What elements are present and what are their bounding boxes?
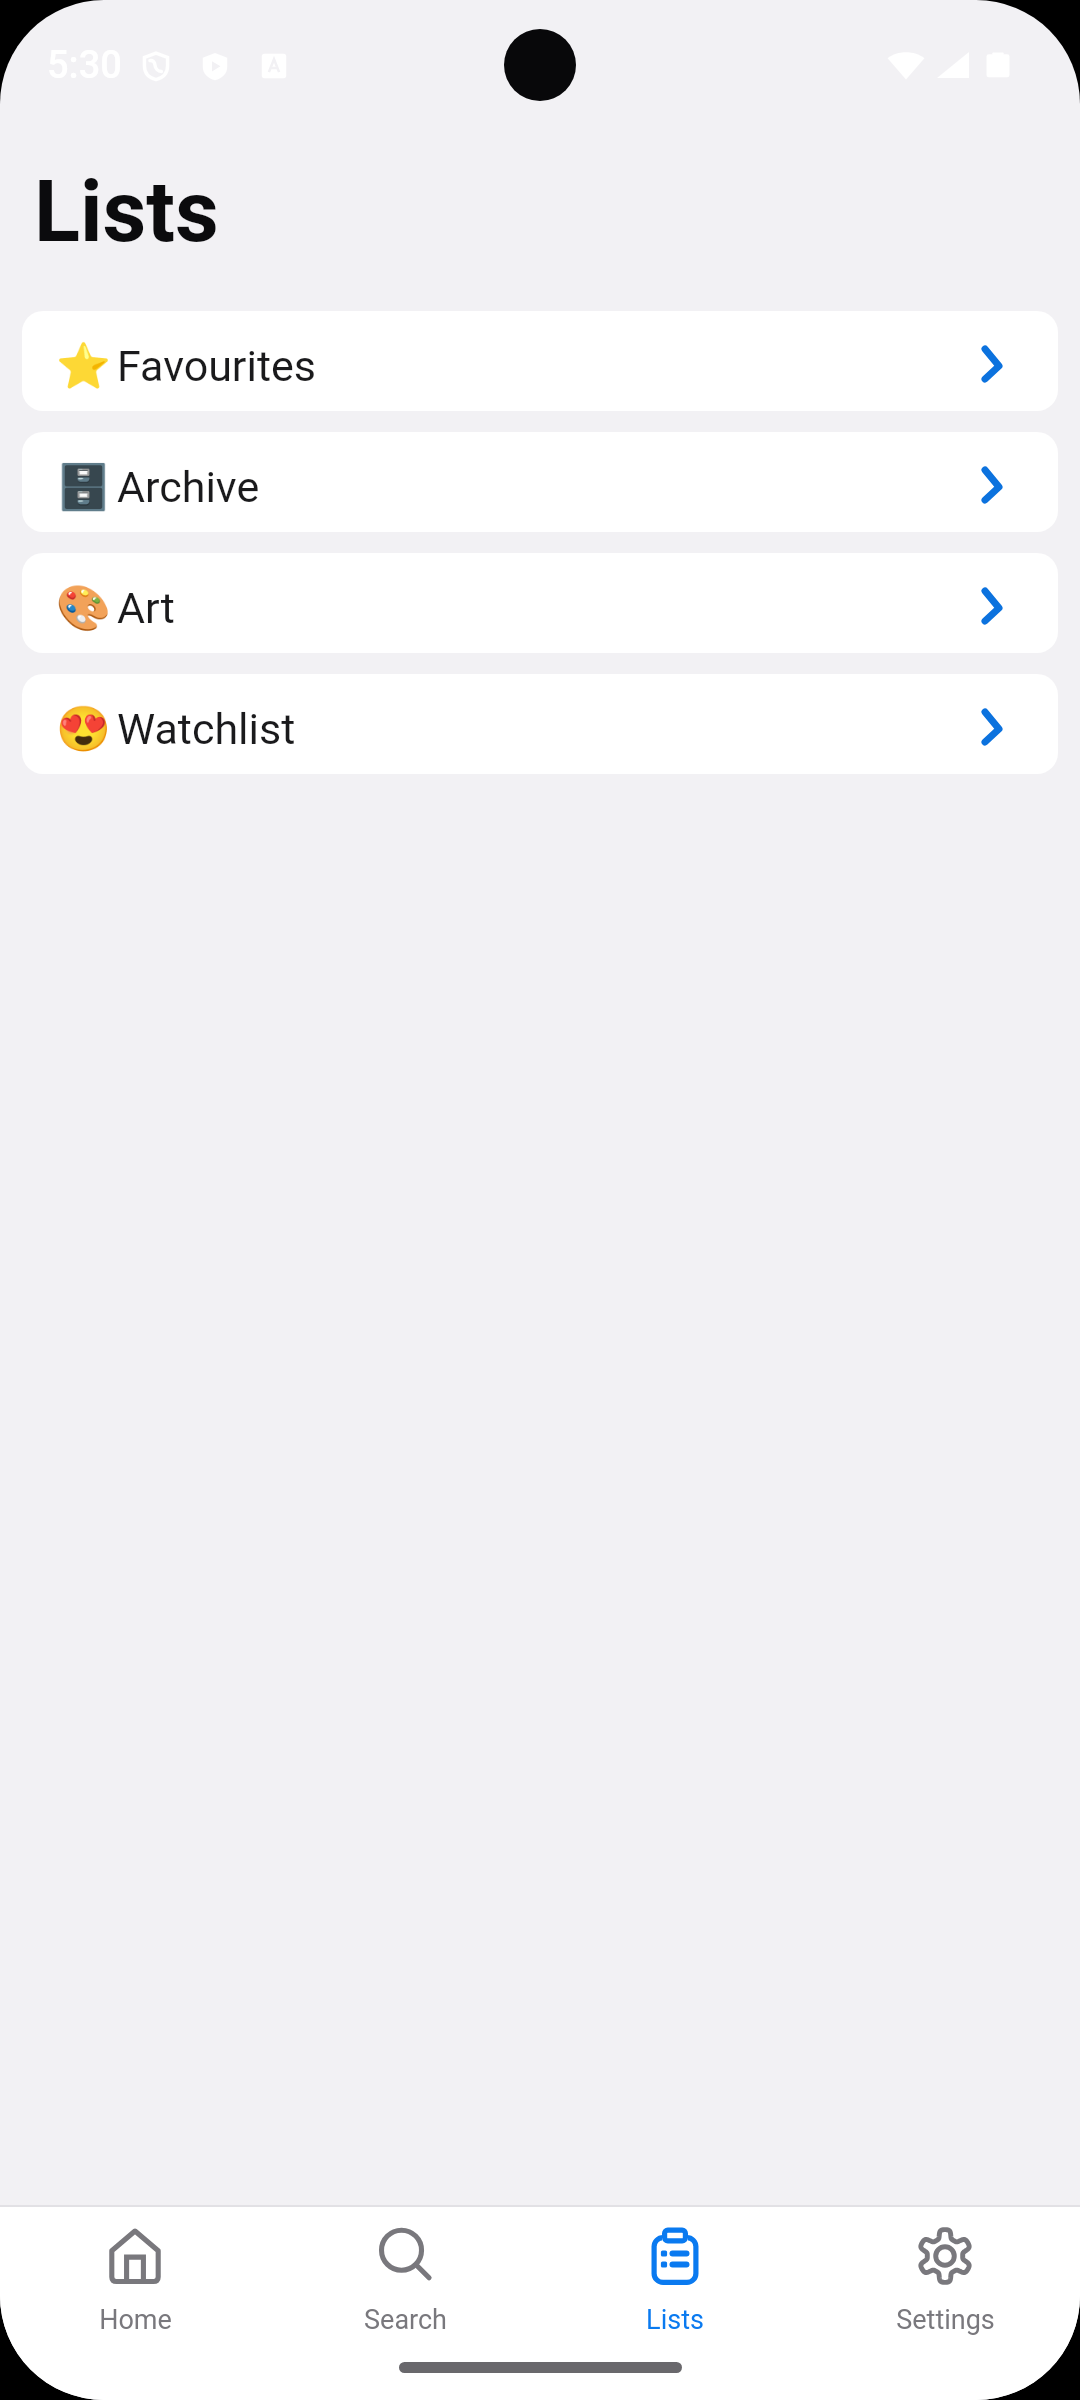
staticText: 🎨 [56,582,111,634]
staticText: 5:30 [47,43,122,88]
staticText: 🗄️ [56,461,111,513]
staticText: Favourites [117,341,316,391]
button[interactable]: Search [270,2207,540,2400]
button[interactable]: Open Art list [22,553,1058,653]
staticText: Art [117,583,175,633]
staticText: Lists [34,162,219,262]
button[interactable]: Settings [810,2207,1080,2400]
staticText: 😍 [56,703,111,755]
staticText: Home [99,2304,172,2336]
staticText: Settings [896,2304,995,2336]
button[interactable]: Home [0,2207,270,2400]
button[interactable]: Lists [540,2207,810,2400]
button[interactable]: Open Favourites list [22,311,1058,411]
staticText: Archive [117,462,260,512]
staticText: Watchlist [117,704,296,754]
staticText: Lists [646,2304,704,2336]
button[interactable]: Open Archive list [22,432,1058,532]
staticText: ⭐ [56,340,111,392]
staticText: Search [364,2304,447,2336]
button[interactable]: Open Watchlist list [22,674,1058,774]
